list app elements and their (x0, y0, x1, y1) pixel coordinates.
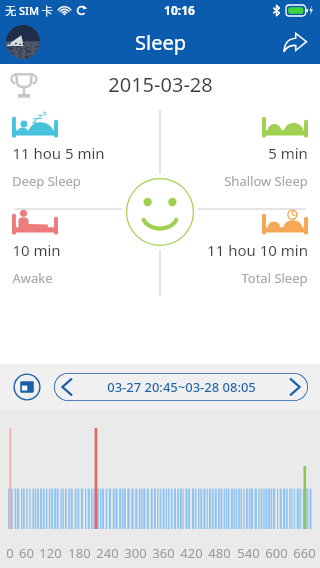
button[interactable]: 11 hou 5 min (12, 112, 148, 190)
staticText: 180 (68, 544, 91, 562)
staticText: 120 (39, 544, 62, 562)
button[interactable]: 11 hou 10 min (172, 209, 308, 287)
staticText: Sleep (135, 29, 186, 56)
staticText: 240 (96, 544, 119, 562)
staticText: Shallow Sleep (224, 172, 308, 190)
staticText: 0 (6, 544, 14, 562)
staticText: 420 (180, 544, 203, 562)
button[interactable]: Profile (6, 25, 40, 59)
button[interactable]: 10 min (12, 209, 148, 287)
staticText: 10 min (12, 240, 61, 260)
button[interactable]: Calendar (12, 372, 42, 402)
button[interactable]: 03-27 20:45~03-28 08:05 (54, 373, 308, 401)
staticText: 无 SIM 卡 (5, 3, 53, 18)
staticText: 10:16 (164, 2, 195, 18)
button[interactable]: Share (280, 27, 310, 57)
staticText: 11 hou 10 min (207, 240, 308, 260)
staticText: 11 hou 5 min (12, 143, 105, 163)
button[interactable]: Sleep quality (122, 174, 198, 250)
staticText: 60 (19, 544, 34, 562)
button[interactable]: Achievements (6, 68, 42, 104)
button[interactable]: 5 min (172, 112, 308, 190)
staticText: 540 (237, 544, 260, 562)
staticText: 600 (265, 544, 288, 562)
staticText: 2015-03-28 (108, 71, 213, 98)
staticText: Awake (12, 269, 53, 287)
staticText: 300 (124, 544, 147, 562)
staticText: 5 min (268, 143, 308, 163)
staticText: 480 (208, 544, 231, 562)
staticText: 660 (293, 544, 316, 562)
staticText: 03-27 20:45~03-28 08:05 (107, 378, 256, 396)
staticText: Total Sleep (241, 269, 308, 287)
staticText: 360 (152, 544, 175, 562)
staticText: Deep Sleep (12, 172, 81, 190)
